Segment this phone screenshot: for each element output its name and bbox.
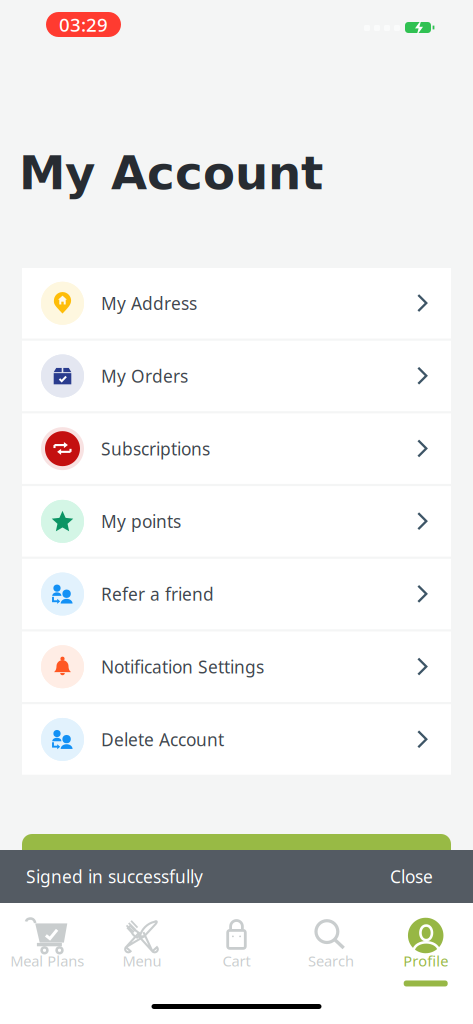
staticText: My points: [101, 510, 181, 533]
staticText: 03:29: [59, 12, 108, 37]
staticText: Delete Account: [101, 728, 224, 751]
button[interactable]: Close: [390, 847, 473, 906]
staticText: My Address: [101, 292, 197, 315]
button[interactable]: Menu: [95, 903, 189, 1024]
staticText: Subscriptions: [101, 437, 210, 460]
staticText: Search: [308, 951, 354, 970]
button[interactable]: Notification Settings: [22, 631, 451, 702]
button[interactable]: My Orders: [22, 341, 451, 411]
staticText: Notification Settings: [101, 655, 264, 678]
staticText: Profile: [403, 951, 448, 970]
staticText: Close: [390, 865, 433, 888]
staticText: Signed in successfully: [26, 865, 203, 888]
button[interactable]: Subscriptions: [22, 413, 451, 484]
button[interactable]: Delete Account: [22, 704, 451, 775]
button[interactable]: Profile: [378, 903, 473, 1024]
staticText: Meal Plans: [10, 951, 84, 970]
button[interactable]: Meal Plans: [0, 903, 95, 1024]
button[interactable]: My Address: [22, 268, 451, 338]
button[interactable]: [22, 834, 451, 890]
staticText: My Account: [19, 146, 323, 200]
staticText: My Orders: [101, 364, 188, 387]
staticText: Refer a friend: [101, 582, 214, 605]
staticText: Cart: [222, 951, 250, 970]
staticText: Menu: [122, 951, 161, 970]
button[interactable]: Refer a friend: [22, 559, 451, 629]
button[interactable]: My points: [22, 486, 451, 557]
button[interactable]: Search: [284, 903, 378, 1024]
button[interactable]: Cart: [189, 903, 284, 1024]
